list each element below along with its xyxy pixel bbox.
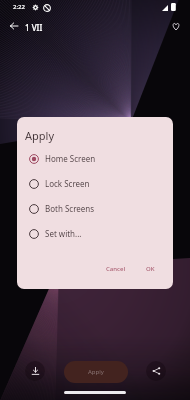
staticText: 2:22 [13,3,25,11]
staticText: Set with... [45,228,82,239]
staticText: 1 VII [25,22,43,33]
button[interactable]: Both Screens [17,196,173,221]
button[interactable]: Apply [64,361,128,383]
button[interactable]: Back [2,14,25,37]
button[interactable]: Home Screen [17,146,173,171]
button[interactable]: Set with... [17,221,173,246]
staticText: Lock Screen [45,178,90,189]
button[interactable]: Download [25,361,45,381]
staticText: OK [146,265,155,273]
button[interactable]: Lock Screen [17,171,173,196]
staticText: Apply [25,128,55,143]
staticText: Cancel [106,265,126,273]
button[interactable]: Favorite [165,15,187,37]
staticText: Both Screens [45,203,95,214]
staticText: Apply [88,368,104,376]
staticText: Home Screen [45,153,96,164]
button[interactable]: Share [146,361,166,381]
button[interactable]: Cancel [102,262,130,276]
button[interactable]: OK [142,262,159,276]
